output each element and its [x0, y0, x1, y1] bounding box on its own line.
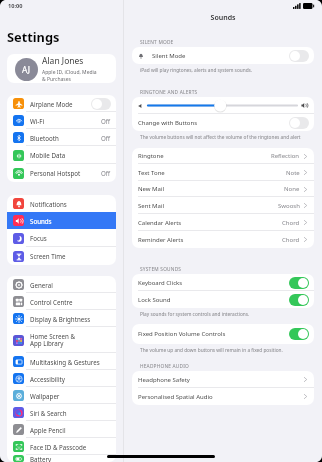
staticText: Wallpaper: [30, 392, 111, 400]
staticText: Notifications: [30, 200, 111, 208]
staticText: Screen Time: [30, 252, 111, 260]
staticText: 10:00: [8, 2, 23, 10]
staticText: Ringtone: [138, 152, 271, 160]
staticText: Mobile Data: [30, 151, 111, 159]
staticText: Change with Buttons: [138, 119, 289, 127]
staticText: The volume buttons will not affect the v…: [140, 134, 301, 140]
button[interactable]: Toggle: [289, 294, 309, 306]
staticText: Swoosh: [278, 202, 300, 210]
button[interactable]: Screen Time: [7, 247, 116, 265]
staticText: HEADPHONE AUDIO: [140, 363, 189, 370]
staticText: Personalised Spatial Audio: [138, 393, 304, 401]
button[interactable]: Fixed Position Volume Controls: [132, 324, 314, 344]
button[interactable]: Toggle: [289, 328, 309, 340]
button[interactable]: Wallpaper: [7, 387, 116, 404]
staticText: SILENT MODE: [140, 39, 174, 46]
staticText: Personal Hotspot: [30, 169, 101, 177]
staticText: Alan Jones: [42, 55, 84, 67]
staticText: None: [284, 185, 300, 193]
staticText: AJ: [22, 64, 31, 75]
staticText: General: [30, 281, 111, 289]
staticText: New Mail: [138, 185, 284, 193]
button[interactable]: Sent Mail: [132, 197, 314, 214]
button[interactable]: Display & Brightness: [7, 310, 116, 327]
staticText: Home Screen & App Library: [30, 332, 111, 348]
staticText: Chord: [282, 219, 300, 227]
button[interactable]: Lock Sound: [132, 291, 314, 308]
button[interactable]: Siri & Search: [7, 404, 116, 421]
staticText: RINGTONE AND ALERTS: [140, 89, 198, 96]
button[interactable]: Toggle: [289, 50, 309, 62]
button[interactable]: Toggle: [289, 117, 309, 129]
staticText: SYSTEM SOUNDS: [140, 266, 182, 273]
staticText: Face ID & Passcode: [30, 443, 111, 451]
button[interactable]: Silent Mode: [132, 47, 314, 64]
button[interactable]: Ringtone: [132, 148, 314, 164]
staticText: Off: [101, 134, 111, 142]
staticText: Note: [286, 169, 300, 177]
button[interactable]: Reminder Alerts: [132, 231, 314, 248]
button[interactable]: Keyboard Clicks: [132, 274, 314, 291]
button[interactable]: Battery: [7, 455, 116, 462]
button[interactable]: Text Tone: [132, 164, 314, 181]
staticText: Silent Mode: [152, 52, 289, 60]
button[interactable]: Toggle: [91, 98, 111, 110]
staticText: Calendar Alerts: [138, 219, 282, 227]
button[interactable]: Personalised Spatial Audio: [132, 388, 314, 405]
button[interactable]: Mobile Data: [7, 146, 116, 164]
staticText: Off: [101, 117, 111, 125]
staticText: iPad will play ringtones, alerts and sys…: [140, 67, 253, 73]
button[interactable]: Calendar Alerts: [132, 214, 314, 231]
staticText: Fixed Position Volume Controls: [138, 330, 289, 338]
staticText: Lock Sound: [138, 296, 289, 304]
staticText: Airplane Mode: [30, 100, 91, 108]
button[interactable]: Multitasking & Gestures: [7, 353, 116, 370]
staticText: Multitasking & Gestures: [30, 358, 111, 366]
button[interactable]: Personal Hotspot: [7, 164, 116, 182]
staticText: The volume up and down buttons will rema…: [140, 347, 283, 353]
staticText: Headphone Safety: [138, 376, 304, 384]
staticText: Apple ID, iCloud, Media & Purchases: [42, 69, 97, 83]
staticText: Siri & Search: [30, 409, 111, 417]
staticText: Chord: [282, 236, 300, 244]
button[interactable]: Bluetooth: [7, 129, 116, 146]
staticText: Display & Brightness: [30, 315, 111, 323]
button[interactable]: Sounds: [7, 212, 116, 229]
staticText: Play sounds for system controls and inte…: [140, 311, 250, 317]
staticText: Control Centre: [30, 298, 111, 306]
staticText: Settings: [7, 28, 60, 45]
button[interactable]: Control Centre: [7, 293, 116, 310]
button[interactable]: Face ID & Passcode: [7, 438, 116, 455]
staticText: Keyboard Clicks: [138, 279, 289, 287]
button[interactable]: Apple Pencil: [7, 421, 116, 438]
staticText: Reflection: [271, 152, 300, 160]
button[interactable]: General: [7, 276, 116, 293]
staticText: Reminder Alerts: [138, 236, 282, 244]
button[interactable]: Focus: [7, 229, 116, 247]
staticText: Sounds: [30, 217, 111, 225]
staticText: Focus: [30, 234, 111, 242]
button[interactable]: AJ: [7, 54, 116, 83]
staticText: Battery: [30, 455, 111, 462]
button[interactable]: Home Screen & App Library: [7, 327, 116, 353]
staticText: Sent Mail: [138, 202, 278, 210]
button[interactable]: Notifications: [7, 195, 116, 212]
staticText: Accessibility: [30, 375, 111, 383]
button[interactable]: Airplane Mode: [7, 95, 116, 112]
button[interactable]: Wi-Fi: [7, 112, 116, 129]
button[interactable]: Accessibility: [7, 370, 116, 387]
staticText: Wi-Fi: [30, 117, 101, 125]
staticText: Apple Pencil: [30, 426, 111, 434]
button[interactable]: New Mail: [132, 181, 314, 197]
button[interactable]: Toggle: [289, 277, 309, 289]
button[interactable]: Change with Buttons: [132, 114, 314, 131]
staticText: Text Tone: [138, 169, 286, 177]
staticText: Bluetooth: [30, 134, 101, 142]
staticText: Sounds: [124, 13, 322, 23]
button[interactable]: Headphone Safety: [132, 371, 314, 388]
staticText: Off: [101, 169, 111, 177]
